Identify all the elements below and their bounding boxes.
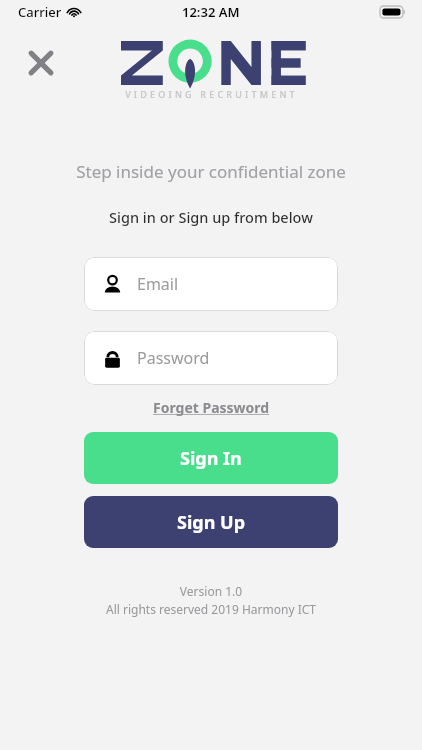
staticText: All rights reserved 2019 Harmony ICT — [0, 601, 422, 617]
button[interactable]: Forget Password — [147, 396, 276, 419]
button[interactable]: Sign Up — [84, 496, 338, 548]
staticText: 12:32 AM — [182, 3, 240, 21]
button[interactable]: Email — [84, 257, 338, 311]
button[interactable]: Close — [16, 38, 66, 88]
staticText: VIDEOING RECRUITMENT — [125, 88, 298, 100]
staticText: Forget Password — [153, 398, 270, 417]
staticText: Sign in or Sign up from below — [0, 207, 422, 227]
staticText: Version 1.0 — [0, 583, 422, 599]
staticText: Email — [137, 273, 179, 295]
staticText: Carrier — [18, 3, 62, 21]
staticText: Password — [137, 347, 210, 369]
staticText: Step inside your confidential zone — [0, 160, 422, 183]
staticText: Sign In — [180, 446, 242, 471]
button[interactable]: Sign In — [84, 432, 338, 484]
button[interactable]: Password — [84, 331, 338, 385]
staticText: Sign Up — [177, 510, 246, 535]
